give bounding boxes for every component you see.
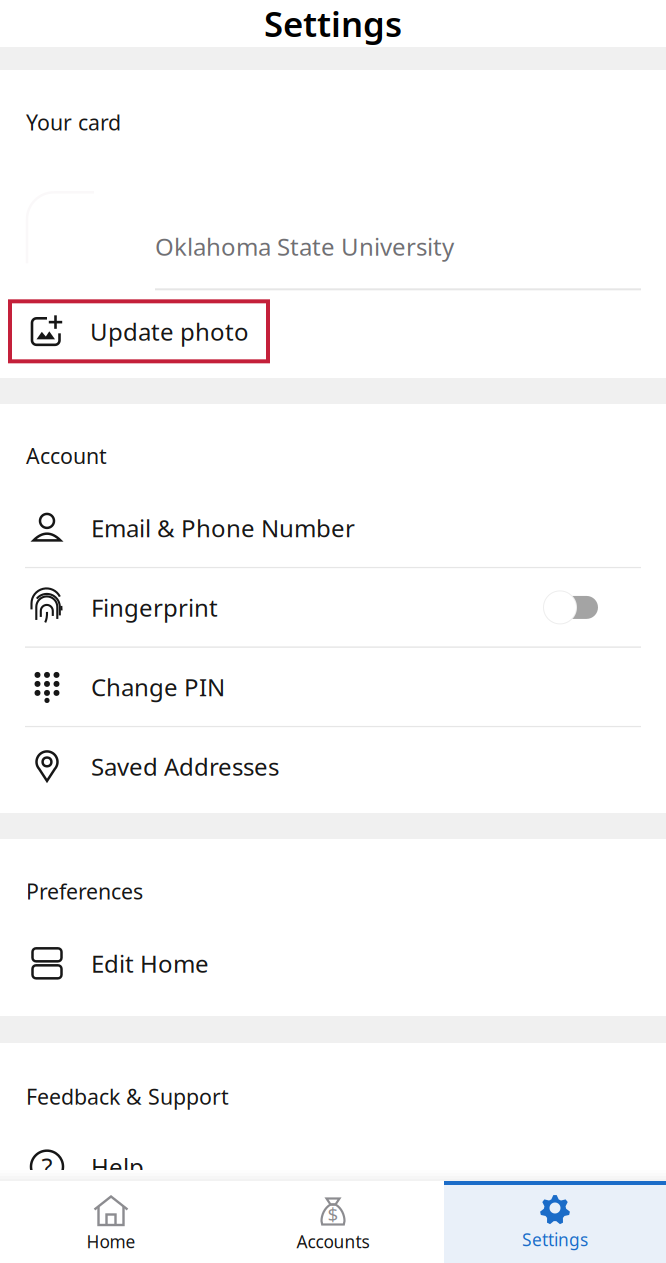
staticText: Fingerprint	[91, 591, 218, 623]
button[interactable]: Edit Home	[0, 924, 666, 1002]
staticText: Change PIN	[91, 671, 225, 703]
button[interactable]: Saved Addresses	[0, 727, 666, 805]
staticText: Email & Phone Number	[91, 512, 355, 544]
staticText: ?	[41, 1150, 52, 1183]
button[interactable]: Update photo	[10, 301, 268, 361]
staticText: Accounts	[296, 1230, 369, 1253]
staticText: Settings	[264, 0, 402, 46]
button[interactable]: Change PIN	[0, 648, 666, 726]
button[interactable]: Home	[0, 1181, 222, 1263]
staticText: Settings	[522, 1228, 588, 1251]
staticText: Feedback & Support	[26, 1082, 229, 1111]
button[interactable]: $	[222, 1181, 444, 1263]
staticText: Account	[26, 442, 107, 470]
button[interactable]: ?	[0, 1128, 666, 1206]
staticText: Your card	[26, 108, 121, 136]
staticText: Update photo	[90, 315, 249, 347]
button[interactable]: Settings	[444, 1181, 666, 1263]
staticText: Preferences	[26, 877, 143, 905]
staticText: Home	[86, 1230, 135, 1253]
staticText: Oklahoma State University	[155, 230, 454, 262]
staticText: Help	[91, 1151, 144, 1183]
staticText: Edit Home	[91, 947, 209, 979]
button[interactable]: Email & Phone Number	[0, 489, 666, 567]
staticText: $	[327, 1202, 338, 1226]
staticText: Saved Addresses	[91, 750, 279, 782]
button[interactable]: Fingerprint	[0, 568, 666, 646]
